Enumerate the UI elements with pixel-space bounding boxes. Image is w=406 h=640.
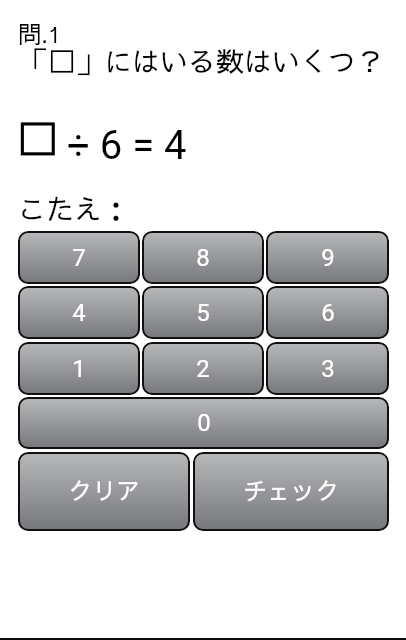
button[interactable]: 4 (18, 286, 140, 339)
staticText: 8 (196, 244, 210, 272)
staticText: 「□」にはいる数はいくつ？ (20, 41, 385, 80)
button[interactable]: 7 (18, 231, 140, 284)
staticText: 1 (72, 355, 86, 383)
button[interactable]: 3 (266, 342, 389, 395)
button[interactable]: 0 (18, 397, 389, 449)
staticText: クリア (68, 473, 140, 506)
button[interactable]: 8 (142, 231, 264, 284)
staticText: 4 (72, 299, 86, 327)
staticText: 9 (321, 244, 335, 272)
staticText: こたえ： (18, 189, 131, 228)
staticText: 0 (197, 409, 211, 437)
staticText: 7 (72, 244, 86, 272)
staticText: 2 (196, 355, 210, 383)
button[interactable]: 6 (266, 286, 389, 339)
button[interactable]: 5 (142, 286, 264, 339)
staticText: 5 (196, 299, 210, 327)
staticText: 3 (321, 355, 335, 383)
button[interactable]: チェック (193, 452, 389, 531)
staticText: 問.1 (18, 17, 61, 49)
button[interactable]: クリア (18, 452, 190, 531)
button[interactable]: 9 (266, 231, 389, 284)
button[interactable]: 2 (142, 342, 264, 395)
staticText: 6 (321, 299, 335, 327)
staticText: チェック (243, 473, 339, 506)
staticText: ÷ 6 = 4 (67, 122, 187, 169)
button[interactable]: 1 (18, 342, 140, 395)
